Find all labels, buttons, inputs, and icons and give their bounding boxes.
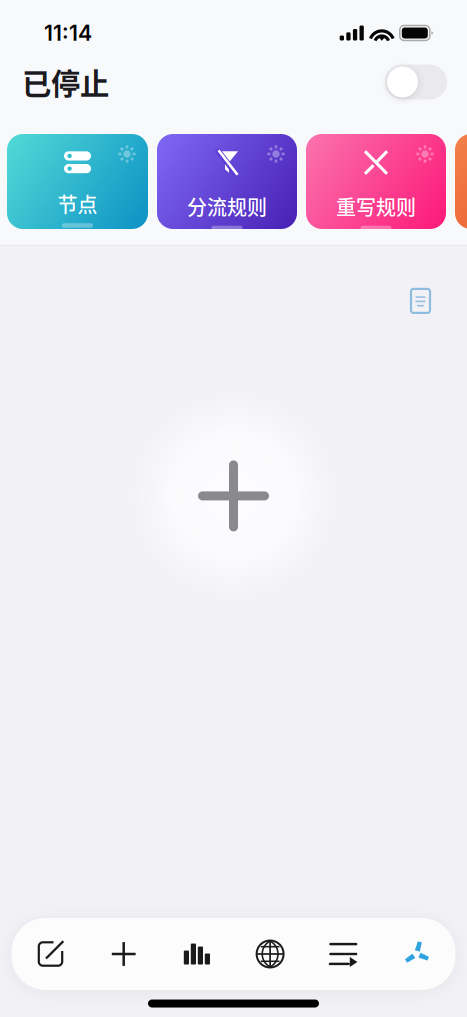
button[interactable]: Edit configuration (22, 926, 78, 982)
button[interactable]: Add (96, 926, 152, 982)
button[interactable]: Statistics (169, 926, 225, 982)
button[interactable]: 模块 (455, 134, 467, 229)
button[interactable]: Start proxy (385, 64, 447, 99)
staticText: 分流规则 (187, 192, 267, 221)
staticText: 已停止 (22, 61, 109, 103)
button[interactable]: More (388, 926, 444, 982)
staticText: 11:14 (44, 20, 92, 46)
button[interactable]: Network (242, 926, 298, 982)
button[interactable]: Add configuration (125, 388, 341, 604)
button[interactable]: Requests (315, 926, 371, 982)
staticText: 重写规则 (336, 192, 416, 221)
button[interactable]: Logs (402, 280, 439, 322)
button[interactable]: 分流规则 (157, 134, 297, 229)
staticText: 节点 (57, 189, 97, 218)
button[interactable]: 重写规则 (306, 134, 446, 229)
button[interactable]: 节点 (7, 134, 148, 229)
